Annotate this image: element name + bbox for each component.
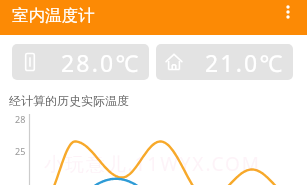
button[interactable]: 21.0℃ [156, 44, 293, 80]
staticText: 28 [15, 113, 26, 125]
staticText: 经计算的历史实际温度 [9, 93, 129, 108]
button[interactable]: 28.0℃ [12, 44, 149, 80]
staticText: 室内温度计 [12, 5, 95, 26]
staticText: 小玩意儿.11WYX.COM [44, 151, 261, 177]
staticText: 21.0℃ [205, 47, 285, 78]
button[interactable]: More options [277, 1, 299, 23]
staticText: 28.0℃ [61, 47, 141, 78]
staticText: 25 [15, 145, 26, 157]
